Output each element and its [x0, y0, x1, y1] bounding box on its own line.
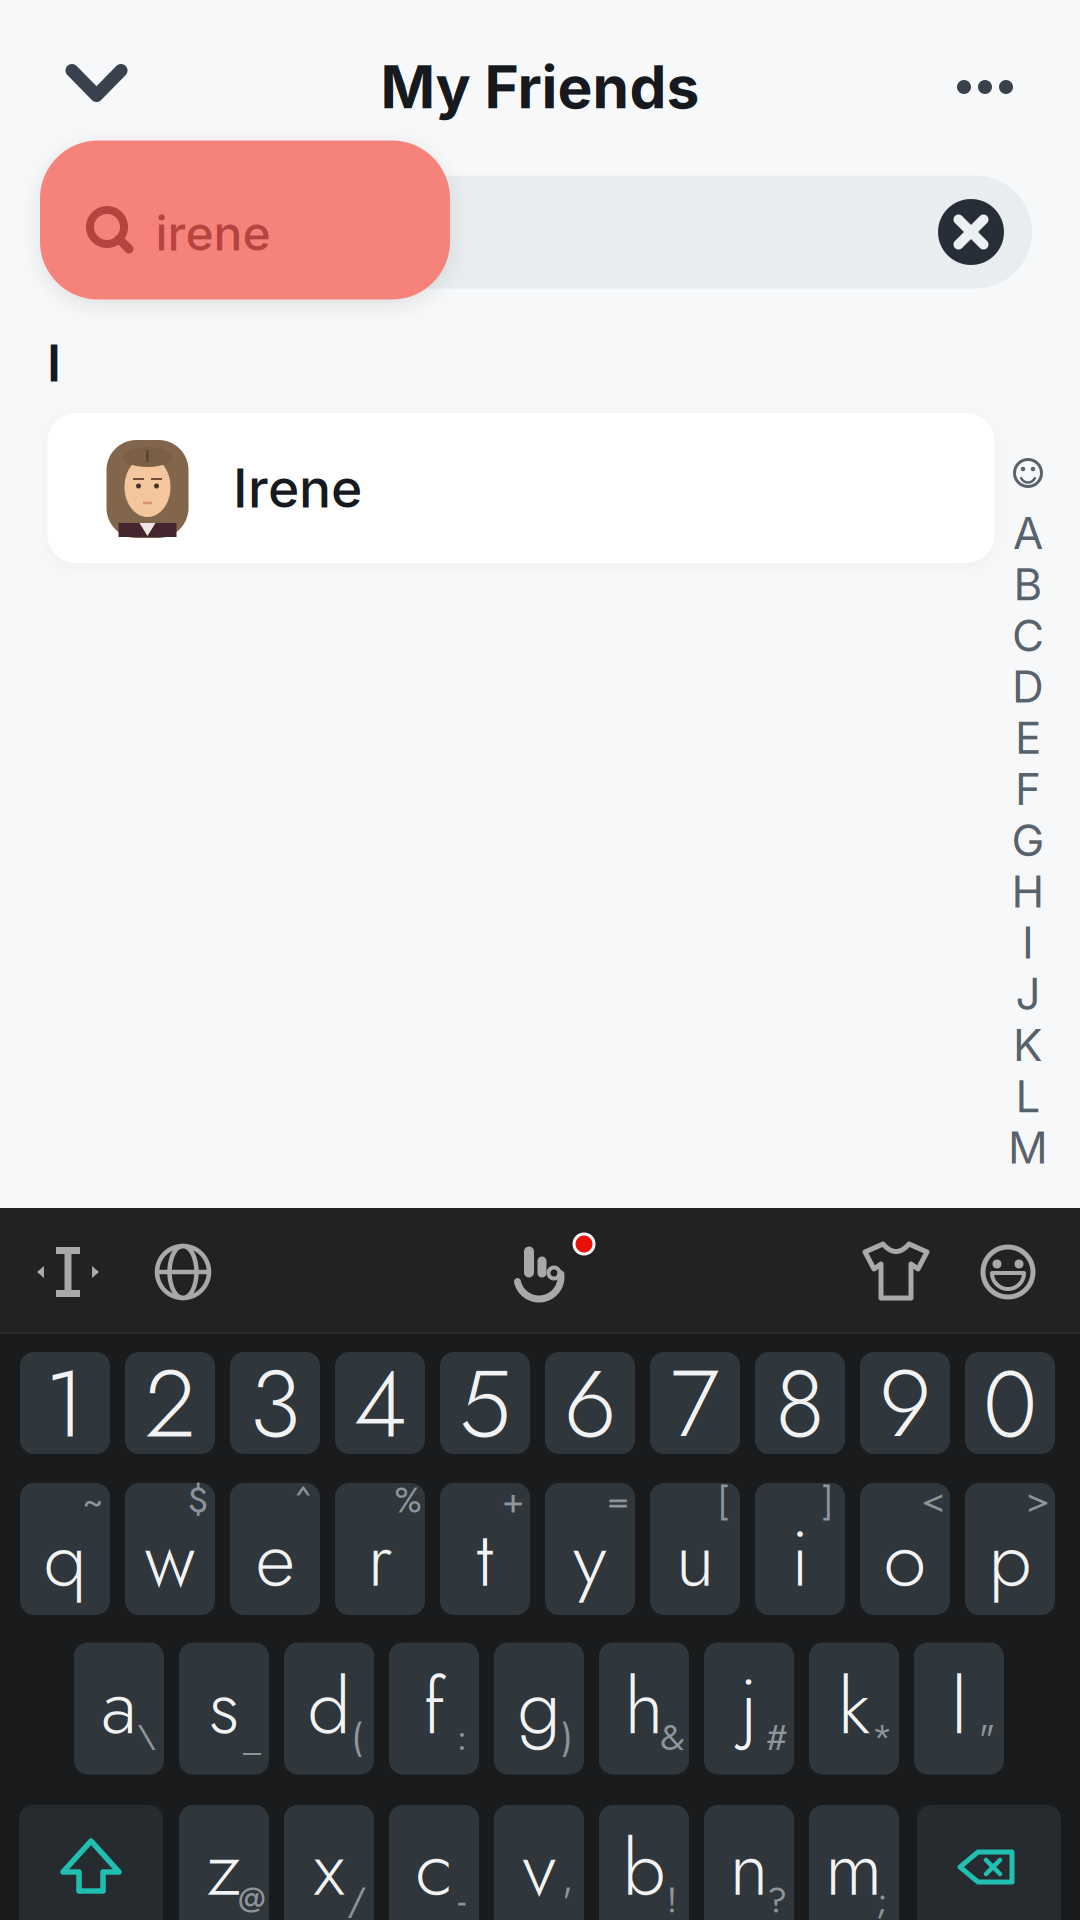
button[interactable]: m — [809, 1805, 899, 1920]
staticText: i — [791, 1503, 809, 1615]
button[interactable]: y — [545, 1483, 635, 1615]
staticText: u — [675, 1503, 714, 1615]
button[interactable]: C — [1006, 611, 1050, 659]
staticText: ^ — [294, 1474, 312, 1526]
staticText: 9 — [879, 1337, 931, 1471]
button[interactable]: Themes — [865, 1244, 927, 1298]
button[interactable]: D — [1006, 663, 1050, 711]
button[interactable]: q — [20, 1483, 110, 1615]
staticText: A — [1013, 507, 1043, 559]
button[interactable]: Delete — [917, 1805, 1061, 1920]
staticText: v — [522, 1812, 555, 1920]
button[interactable]: A — [1006, 509, 1050, 557]
button[interactable]: Dismiss — [72, 70, 121, 95]
button[interactable]: 3 — [230, 1352, 320, 1454]
staticText: @ — [238, 1874, 266, 1920]
button[interactable]: u — [650, 1483, 740, 1615]
button[interactable]: M — [1006, 1123, 1050, 1171]
button[interactable]: r — [335, 1483, 425, 1615]
button[interactable]: t — [440, 1483, 530, 1615]
button[interactable]: 6 — [545, 1352, 635, 1454]
staticText: I — [1022, 917, 1034, 968]
button[interactable]: Keyboard menu — [508, 1242, 572, 1306]
staticText: l — [951, 1651, 967, 1762]
button[interactable]: L — [1006, 1072, 1050, 1120]
button[interactable]: z — [179, 1805, 269, 1920]
button[interactable]: J — [1006, 970, 1050, 1018]
button[interactable]: 2 — [125, 1352, 215, 1454]
staticText: q — [43, 1503, 86, 1615]
staticText: ~ — [82, 1474, 103, 1526]
staticText: > — [1026, 1474, 1049, 1526]
button[interactable]: K — [1006, 1021, 1050, 1069]
button[interactable]: Best friends — [1013, 458, 1043, 488]
button[interactable]: 7 — [650, 1352, 740, 1454]
button[interactable]: j — [704, 1642, 794, 1774]
button[interactable]: Emoji — [981, 1245, 1035, 1299]
button[interactable]: k — [809, 1642, 899, 1774]
button[interactable]: Cursor — [36, 1244, 100, 1300]
staticText: [ — [717, 1474, 728, 1526]
staticText: 1 — [44, 1337, 85, 1471]
staticText: z — [206, 1812, 241, 1920]
button[interactable]: Shift — [19, 1805, 163, 1920]
button[interactable]: l — [914, 1642, 1004, 1774]
staticText: r — [367, 1503, 392, 1615]
button[interactable]: 1 — [20, 1352, 110, 1454]
staticText: a — [101, 1651, 137, 1762]
button[interactable]: I — [1006, 919, 1050, 967]
button[interactable]: Switch language — [156, 1245, 210, 1299]
button[interactable]: o — [860, 1483, 950, 1615]
staticText: 2 — [144, 1337, 195, 1471]
staticText: w — [144, 1503, 195, 1615]
button[interactable]: 0 — [965, 1352, 1055, 1454]
button[interactable]: Clear search — [938, 199, 1004, 265]
button[interactable]: n — [704, 1805, 794, 1920]
staticText: K — [1013, 1019, 1043, 1071]
staticText: f — [423, 1651, 445, 1762]
button[interactable]: a — [74, 1642, 164, 1774]
button[interactable]: v — [494, 1805, 584, 1920]
staticText: 8 — [775, 1337, 825, 1471]
staticText: F — [1015, 763, 1041, 815]
button[interactable]: x — [284, 1805, 374, 1920]
button[interactable]: Irene — [47, 413, 994, 563]
staticText: s — [208, 1651, 239, 1762]
staticText: ) — [561, 1711, 572, 1763]
button[interactable]: b — [599, 1805, 689, 1920]
staticText: C — [1012, 609, 1044, 661]
button[interactable]: 5 — [440, 1352, 530, 1454]
button[interactable]: c — [389, 1805, 479, 1920]
staticText: d — [307, 1651, 350, 1762]
button[interactable]: F — [1006, 765, 1050, 813]
staticText: t — [476, 1503, 493, 1615]
staticText: c — [415, 1812, 452, 1920]
staticText: e — [255, 1503, 294, 1615]
button[interactable]: w — [125, 1483, 215, 1615]
staticText: p — [988, 1503, 1031, 1615]
staticText: D — [1012, 661, 1044, 712]
button[interactable]: f — [389, 1642, 479, 1774]
button[interactable]: 9 — [860, 1352, 950, 1454]
staticText: m — [825, 1812, 883, 1920]
button[interactable]: 8 — [755, 1352, 845, 1454]
button[interactable]: H — [1006, 867, 1050, 915]
button[interactable]: g — [494, 1642, 584, 1774]
button[interactable]: p — [965, 1483, 1055, 1615]
button[interactable]: i — [755, 1483, 845, 1615]
staticText: 7 — [670, 1337, 719, 1471]
button[interactable]: E — [1006, 714, 1050, 762]
button[interactable]: G — [1006, 816, 1050, 864]
button[interactable]: e — [230, 1483, 320, 1615]
button[interactable]: s — [179, 1642, 269, 1774]
staticText: My Friends — [380, 52, 699, 122]
staticText: I — [47, 333, 61, 393]
button[interactable]: h — [599, 1642, 689, 1774]
staticText: $ — [187, 1474, 208, 1526]
button[interactable]: More — [950, 67, 1020, 107]
button[interactable]: 4 — [335, 1352, 425, 1454]
staticText: = — [607, 1474, 629, 1526]
button[interactable]: B — [1006, 560, 1050, 608]
button[interactable]: d — [284, 1642, 374, 1774]
staticText: E — [1015, 712, 1041, 764]
